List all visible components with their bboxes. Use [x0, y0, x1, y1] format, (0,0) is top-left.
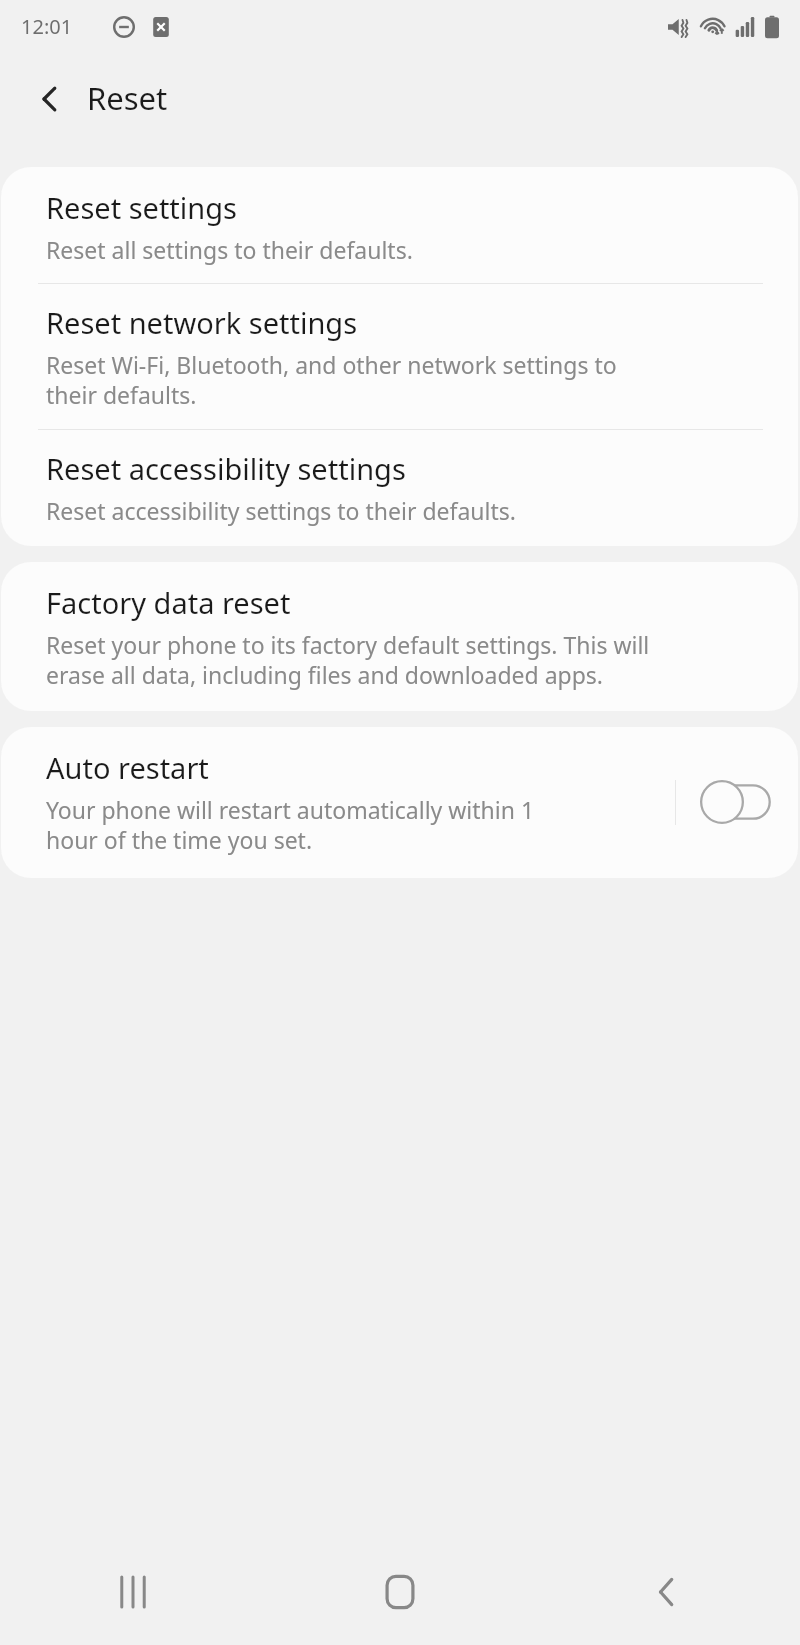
button[interactable]: Navigate up	[20, 69, 80, 129]
staticText: Reset Wi-Fi, Bluetooth, and other networ…	[46, 349, 617, 411]
staticText: Reset settings	[46, 188, 237, 227]
staticText: Reset network settings	[46, 303, 358, 342]
staticText: 12:01	[21, 13, 73, 40]
button[interactable]: Back	[623, 1548, 711, 1636]
button[interactable]: Home	[356, 1548, 444, 1636]
button[interactable]: Auto restart toggle, off	[698, 774, 774, 830]
staticText: Reset accessibility settings to their de…	[46, 495, 516, 526]
button[interactable]: Recent apps	[89, 1548, 177, 1636]
staticText: Reset all settings to their defaults.	[46, 234, 413, 265]
staticText: Reset your phone to its factory default …	[46, 629, 650, 691]
staticText: Reset accessibility settings	[46, 449, 406, 488]
button[interactable]: Factory data reset	[1, 562, 798, 711]
staticText: Reset	[87, 77, 168, 119]
button[interactable]: Reset network settings	[1, 284, 798, 429]
staticText: Your phone will restart automatically wi…	[46, 794, 535, 856]
button[interactable]: Reset accessibility settings	[1, 430, 798, 546]
button[interactable]: Reset settings	[1, 167, 798, 283]
staticText: Factory data reset	[46, 583, 291, 622]
button[interactable]: Auto restart	[1, 727, 798, 878]
staticText: Auto restart	[46, 748, 209, 787]
